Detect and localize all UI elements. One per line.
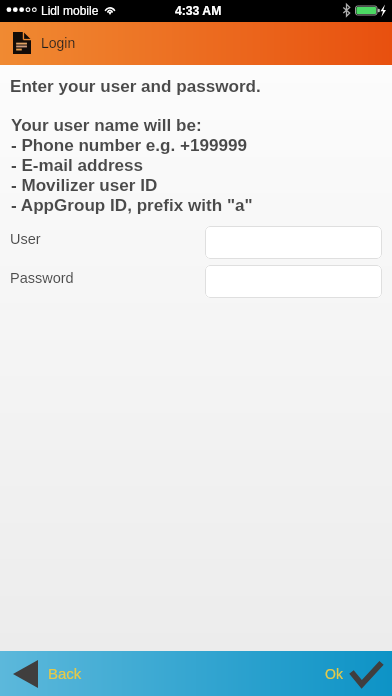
- button[interactable]: Login: [13, 32, 31, 54]
- staticText: Enter your user and password.: [10, 77, 261, 96]
- staticText: - Movilizer user ID: [11, 176, 158, 195]
- button[interactable]: Ok: [325, 651, 382, 696]
- staticText: Lidl mobile: [41, 4, 99, 17]
- staticText: Login: [41, 35, 76, 51]
- staticText: - AppGroup ID, prefix with "a": [11, 196, 253, 215]
- staticText: Back: [48, 665, 82, 682]
- staticText: Your user name will be:: [11, 116, 202, 135]
- staticText: Password: [10, 270, 205, 286]
- button[interactable]: Back: [13, 651, 82, 696]
- staticText: - E-mail address: [11, 156, 144, 175]
- button[interactable]: [205, 226, 382, 259]
- staticText: - Phone number e.g. +199999: [11, 136, 248, 155]
- staticText: Ok: [325, 666, 343, 682]
- staticText: User: [10, 231, 205, 247]
- staticText: 4:33 AM: [175, 4, 222, 18]
- button[interactable]: [205, 265, 382, 298]
